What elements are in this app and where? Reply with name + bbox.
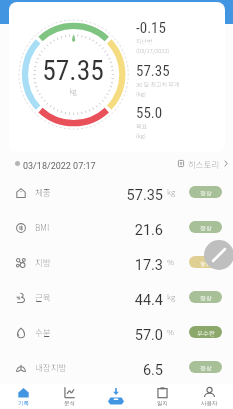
staticText: 57.35 xyxy=(90,187,163,204)
staticText: 목표 xyxy=(136,122,148,131)
button[interactable]: 내장지방 xyxy=(0,349,233,384)
staticText: kg xyxy=(167,186,176,198)
staticText: 정상 xyxy=(200,293,212,302)
staticText: 일지 xyxy=(157,400,168,407)
button[interactable]: BMI xyxy=(0,209,233,244)
button[interactable] xyxy=(92,384,139,409)
staticText: 정상 xyxy=(200,188,212,197)
button[interactable]: 기록 xyxy=(0,384,46,409)
staticText: 내장지방 xyxy=(35,361,67,373)
staticText: 우수한 xyxy=(197,328,215,337)
staticText: 21.6 xyxy=(90,222,163,239)
staticText: 57.35 xyxy=(42,54,104,86)
staticText: 57.35 xyxy=(136,62,170,80)
staticText: % xyxy=(167,326,175,338)
staticText: 체중 xyxy=(35,186,51,198)
staticText: kg xyxy=(69,86,77,96)
staticText: 지방 xyxy=(35,256,51,268)
staticText: (kg) xyxy=(136,131,146,140)
staticText: 기록 xyxy=(18,400,29,407)
button[interactable]: 근육 xyxy=(0,279,233,314)
button[interactable]: 일지 xyxy=(139,384,186,409)
button[interactable]: 체중 xyxy=(0,174,233,209)
staticText: 6.5 xyxy=(90,362,163,379)
staticText: 근육 xyxy=(35,291,51,303)
staticText: 30 일 최고치 무게 xyxy=(136,80,180,89)
button[interactable]: 분석 xyxy=(46,384,92,409)
staticText: 히스토리 xyxy=(188,158,220,170)
staticText: 높음 xyxy=(200,258,212,267)
staticText: 수분 xyxy=(35,326,51,338)
staticText: 정상 xyxy=(200,223,212,232)
button[interactable]: 사용자 xyxy=(186,384,233,409)
staticText: 17.3 xyxy=(90,257,163,274)
staticText: 55.0 xyxy=(136,104,163,122)
staticText: 03/18/2022 07:17 xyxy=(23,161,96,172)
staticText: -0.15 xyxy=(136,19,166,37)
button[interactable]: 수분 xyxy=(0,314,233,349)
staticText: BMI xyxy=(35,221,50,233)
staticText: 정상 xyxy=(200,363,212,372)
button[interactable]: 히스토리 xyxy=(176,155,230,172)
staticText: (kg) xyxy=(136,89,146,98)
staticText: (03/17/2022) xyxy=(136,46,170,55)
staticText: 사용자 xyxy=(201,400,218,407)
staticText: 분석 xyxy=(64,400,75,407)
staticText: % xyxy=(167,256,175,268)
staticText: 57.0 xyxy=(90,327,163,344)
button[interactable]: Edit xyxy=(204,240,233,270)
staticText: kg xyxy=(167,291,176,303)
staticText: 지난번 xyxy=(136,37,153,46)
button[interactable]: 지방 xyxy=(0,244,233,279)
staticText: 44.4 xyxy=(90,292,163,309)
